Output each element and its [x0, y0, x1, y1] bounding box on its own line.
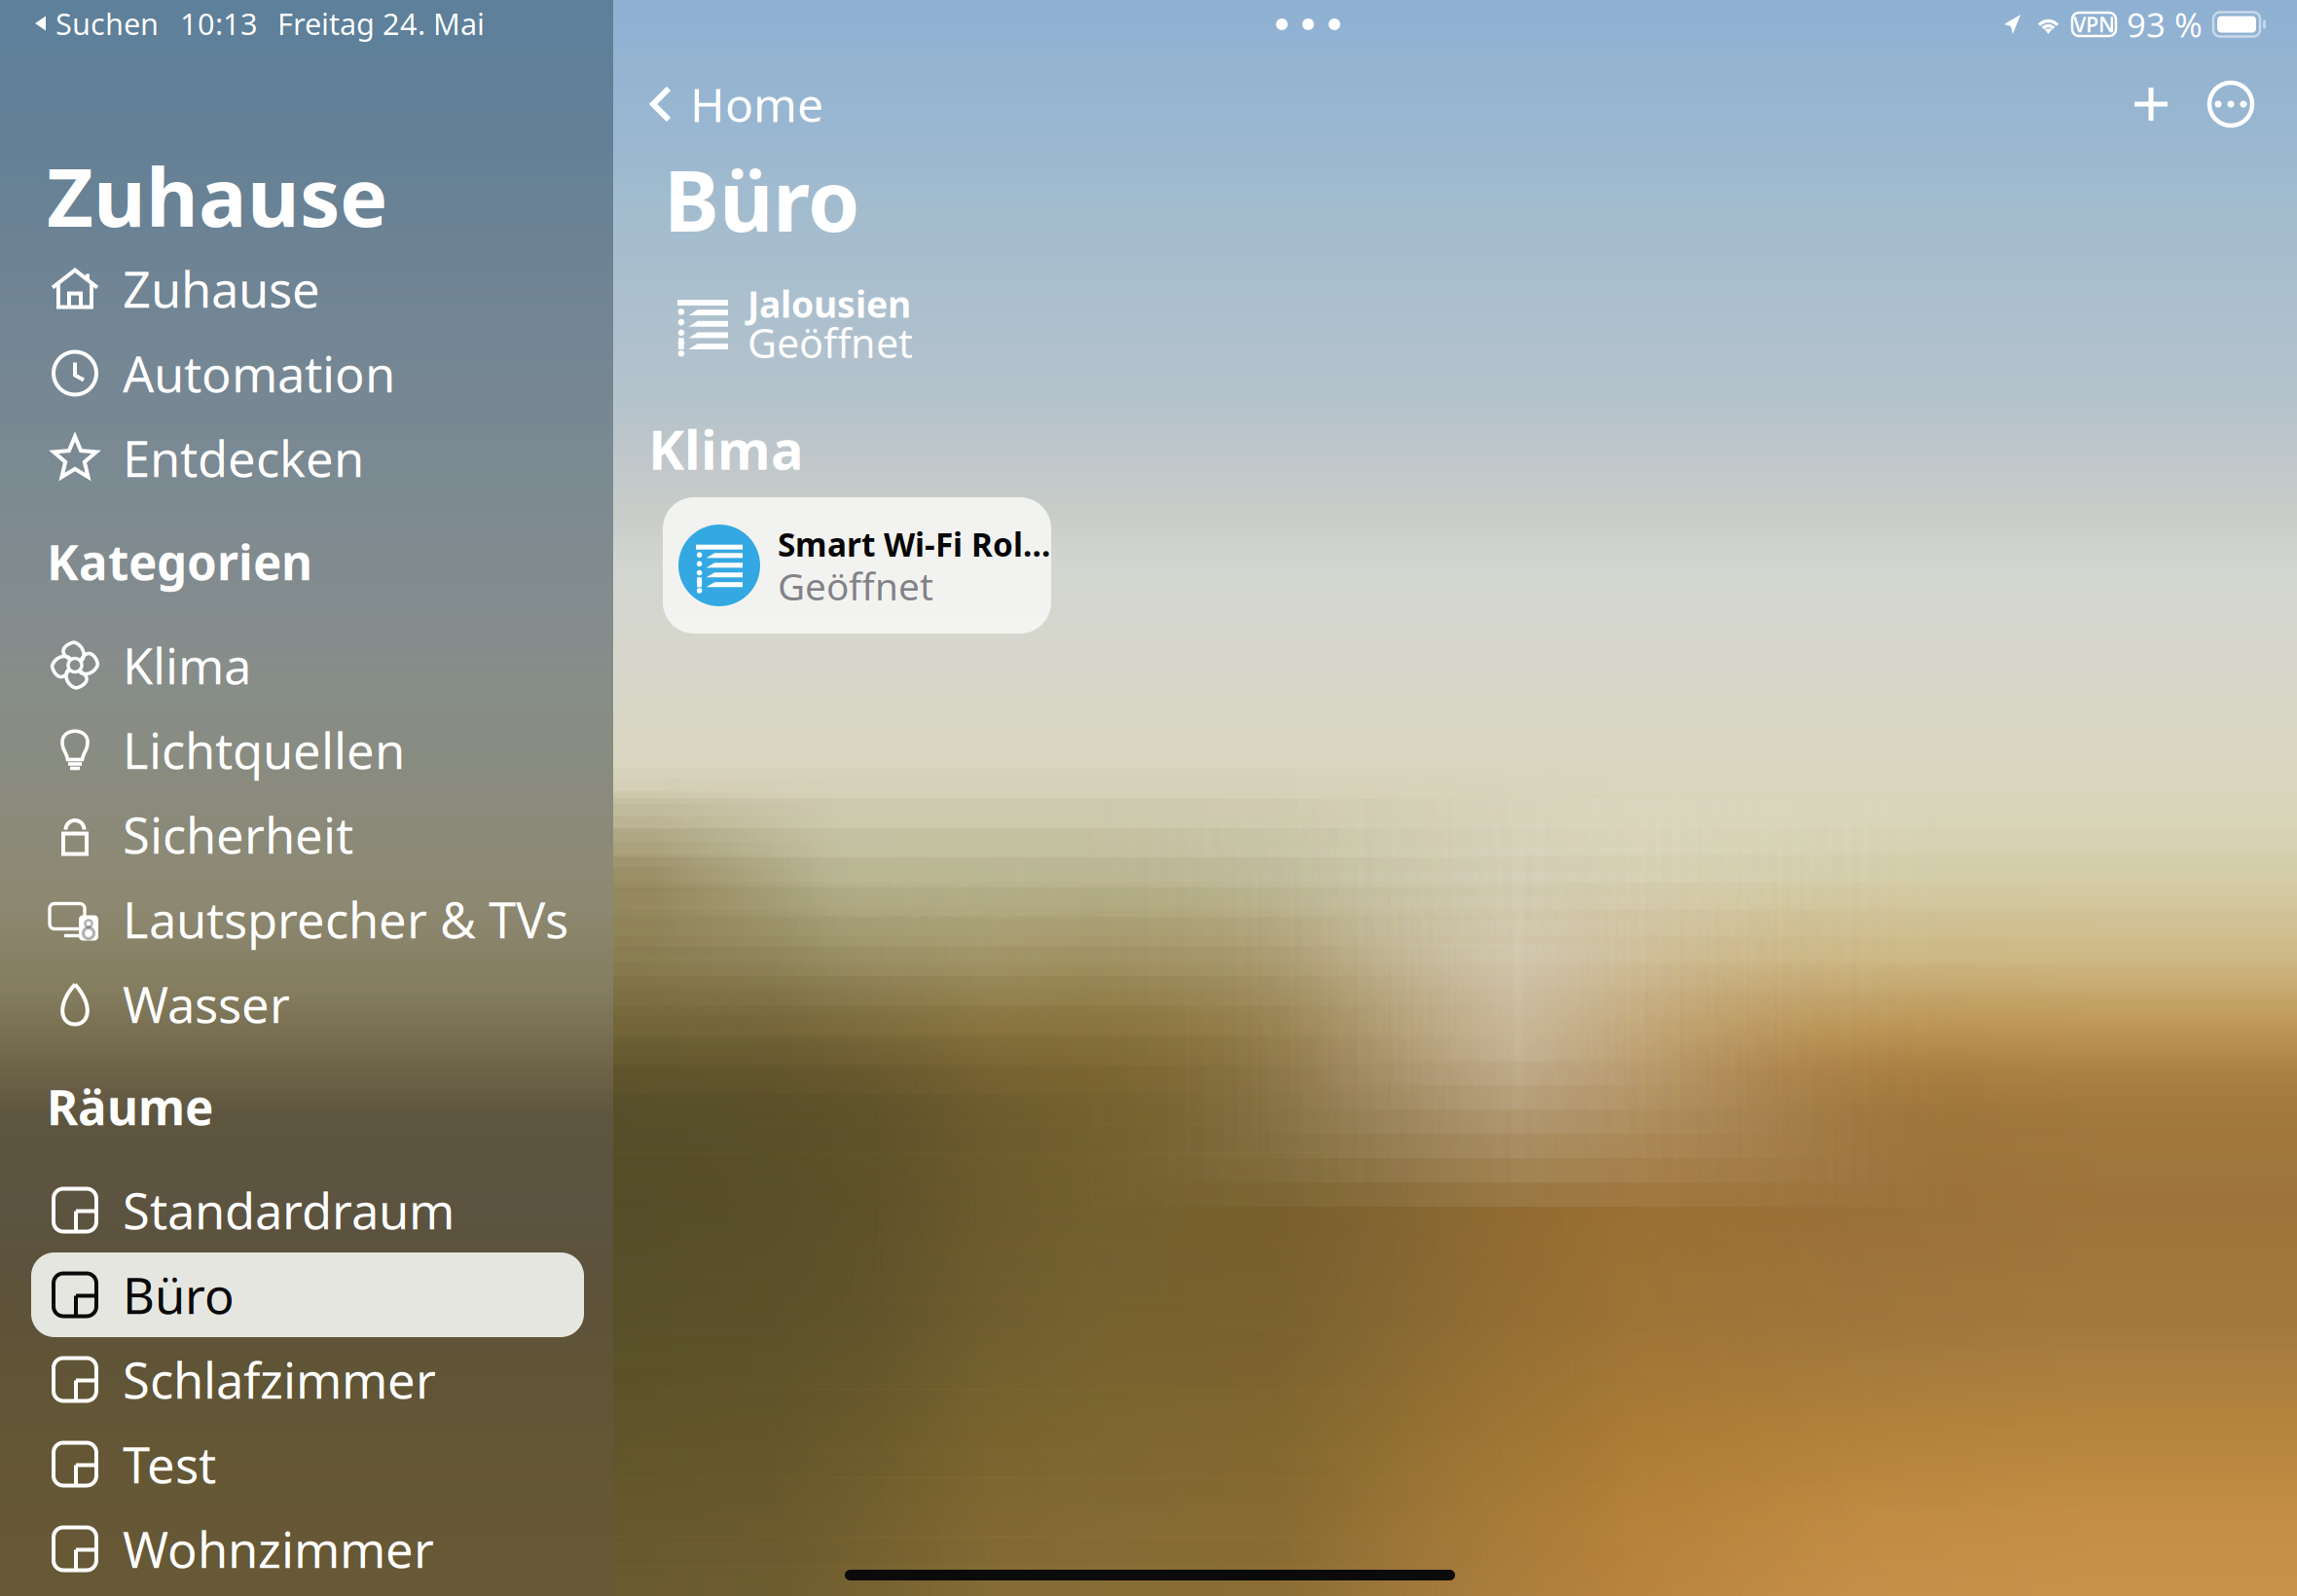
- staticText: Räume: [47, 1075, 213, 1138]
- staticText: Klima: [648, 412, 804, 485]
- button[interactable]: Wasser: [0, 961, 584, 1046]
- button[interactable]: Home: [613, 65, 839, 143]
- staticText: Freitag 24. Mai: [277, 4, 485, 43]
- button[interactable]: Smart Wi-Fi Roll...: [663, 497, 1051, 634]
- button[interactable]: Entdecken: [0, 416, 584, 500]
- button[interactable]: Büro: [0, 1252, 584, 1337]
- button[interactable]: Lautsprecher & TVs: [0, 877, 584, 961]
- staticText: Wohnzimmer: [123, 1516, 434, 1582]
- staticText: Smart Wi-Fi Roll...: [778, 522, 1051, 566]
- staticText: VPN: [2073, 11, 2115, 38]
- staticText: Entdecken: [123, 425, 364, 491]
- staticText: Standardraum: [123, 1177, 455, 1243]
- staticText: Sicherheit: [123, 802, 353, 867]
- button[interactable]: Zuhause: [0, 246, 584, 331]
- staticText: Kategorien: [47, 530, 312, 593]
- button[interactable]: Lichtquellen: [0, 707, 584, 792]
- button[interactable]: Test: [0, 1422, 584, 1506]
- staticText: Geöffnet: [778, 561, 933, 611]
- staticText: Automation: [123, 341, 395, 406]
- button[interactable]: Jalousien: [613, 283, 1236, 365]
- staticText: Zuhause: [123, 256, 320, 321]
- staticText: Jalousien: [747, 279, 911, 328]
- staticText: Suchen: [55, 4, 159, 43]
- staticText: Home: [690, 73, 823, 135]
- button[interactable]: Weitere Optionen: [2190, 63, 2272, 145]
- staticText: 93 %: [2127, 2, 2203, 47]
- button[interactable]: Gerät hinzufügen: [2112, 65, 2190, 143]
- staticText: Lichtquellen: [123, 717, 405, 783]
- staticText: Wasser: [123, 971, 290, 1037]
- staticText: Schlafzimmer: [123, 1347, 436, 1412]
- button[interactable]: Wohnzimmer: [0, 1506, 584, 1591]
- button[interactable]: Klima: [0, 623, 584, 707]
- staticText: Klima: [123, 632, 251, 698]
- button[interactable]: Schlafzimmer: [0, 1337, 584, 1422]
- staticText: 10:13: [180, 4, 258, 43]
- staticText: Zuhause: [47, 142, 387, 249]
- button[interactable]: Standardraum: [0, 1168, 584, 1252]
- staticText: Büro: [664, 144, 859, 255]
- staticText: Büro: [123, 1262, 235, 1328]
- button[interactable]: Sicherheit: [0, 792, 584, 877]
- staticText: Lautsprecher & TVs: [123, 886, 568, 952]
- staticText: Test: [123, 1431, 216, 1497]
- staticText: Geöffnet: [747, 316, 913, 369]
- button[interactable]: Automation: [0, 331, 584, 416]
